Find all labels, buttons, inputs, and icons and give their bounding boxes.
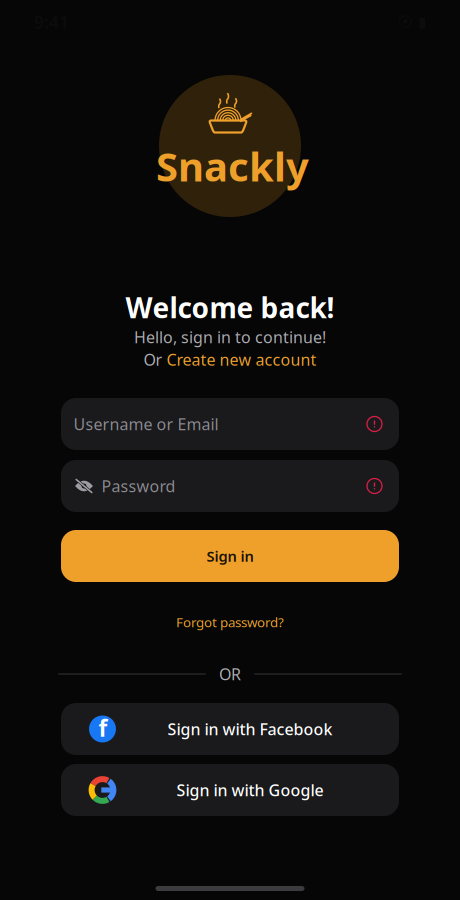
- staticText: Sign in: [206, 546, 253, 566]
- staticText: Password: [101, 475, 175, 497]
- staticText: Sign in with Google: [176, 779, 323, 801]
- staticText: Forgot password?: [176, 613, 284, 631]
- button[interactable]: Create new account: [166, 349, 316, 370]
- button[interactable]: f: [61, 703, 399, 755]
- staticText: Sign in with Facebook: [167, 718, 332, 740]
- staticText: Or: [143, 349, 162, 370]
- staticText: OR: [219, 663, 241, 685]
- staticText: Hello, sign in to continue!: [134, 326, 326, 348]
- staticText: Snackly: [156, 139, 309, 192]
- button[interactable]: Forgot password?: [176, 614, 284, 630]
- staticText: Create new account: [166, 349, 316, 370]
- staticText: f: [98, 713, 107, 743]
- staticText: Welcome back!: [125, 289, 334, 326]
- button[interactable]: Sign in with Google: [61, 764, 399, 816]
- button[interactable]: Password: [61, 460, 399, 512]
- button[interactable]: Sign in: [61, 530, 399, 582]
- staticText: Username or Email: [73, 413, 218, 435]
- button[interactable]: Username or Email: [61, 398, 399, 450]
